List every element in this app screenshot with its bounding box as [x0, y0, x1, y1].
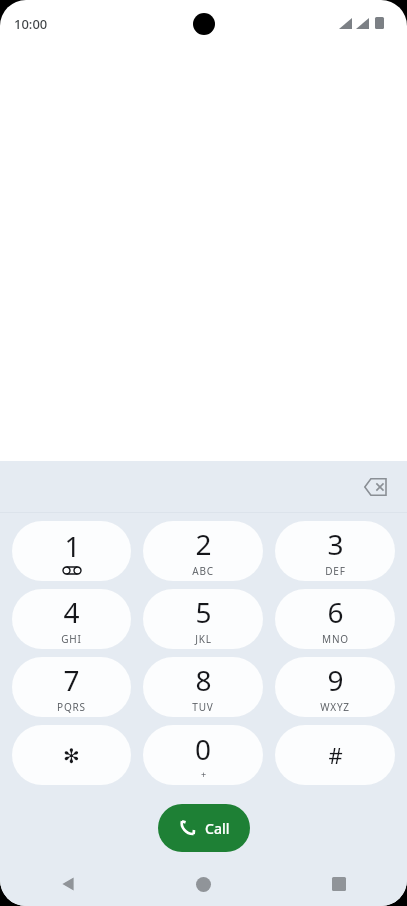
button[interactable]: Call [158, 804, 250, 852]
staticText: 8 [195, 661, 212, 699]
staticText: 6 [327, 593, 344, 631]
staticText: DEF [325, 564, 346, 578]
staticText: 7 [63, 661, 80, 699]
staticText: 1 [64, 527, 81, 565]
staticText: GHI [61, 632, 82, 646]
staticText: MNO [322, 632, 349, 646]
staticText: 2 [195, 525, 212, 563]
button[interactable]: 5 [143, 589, 263, 649]
button[interactable]: 1 [12, 521, 131, 581]
button[interactable]: Backspace [353, 465, 397, 509]
staticText: ✻ [63, 744, 80, 767]
button[interactable]: 0 [143, 725, 263, 785]
button[interactable]: 7 [12, 657, 131, 717]
button[interactable]: 3 [275, 521, 395, 581]
staticText: WXYZ [320, 700, 350, 714]
button[interactable]: 9 [275, 657, 395, 717]
staticText: JKL [195, 632, 212, 646]
staticText: 0 [195, 730, 212, 768]
button[interactable]: 8 [143, 657, 263, 717]
button[interactable]: 2 [143, 521, 263, 581]
button[interactable]: Home [135, 862, 271, 906]
button[interactable]: # [275, 725, 395, 785]
staticText: ABC [192, 564, 214, 578]
staticText: TUV [192, 700, 214, 714]
button[interactable]: Recent apps [271, 862, 407, 906]
staticText: 9 [327, 661, 344, 699]
button[interactable]: ✻ [12, 725, 131, 785]
staticText: 3 [327, 525, 344, 563]
button[interactable]: Back [0, 862, 135, 906]
staticText: # [328, 740, 343, 770]
staticText: PQRS [57, 700, 86, 714]
staticText: + [201, 768, 207, 780]
staticText: 10:00 [14, 15, 48, 33]
staticText: 4 [63, 593, 80, 631]
button[interactable]: 4 [12, 589, 131, 649]
staticText: 5 [195, 593, 212, 631]
button[interactable]: 6 [275, 589, 395, 649]
staticText: Call [205, 819, 230, 838]
